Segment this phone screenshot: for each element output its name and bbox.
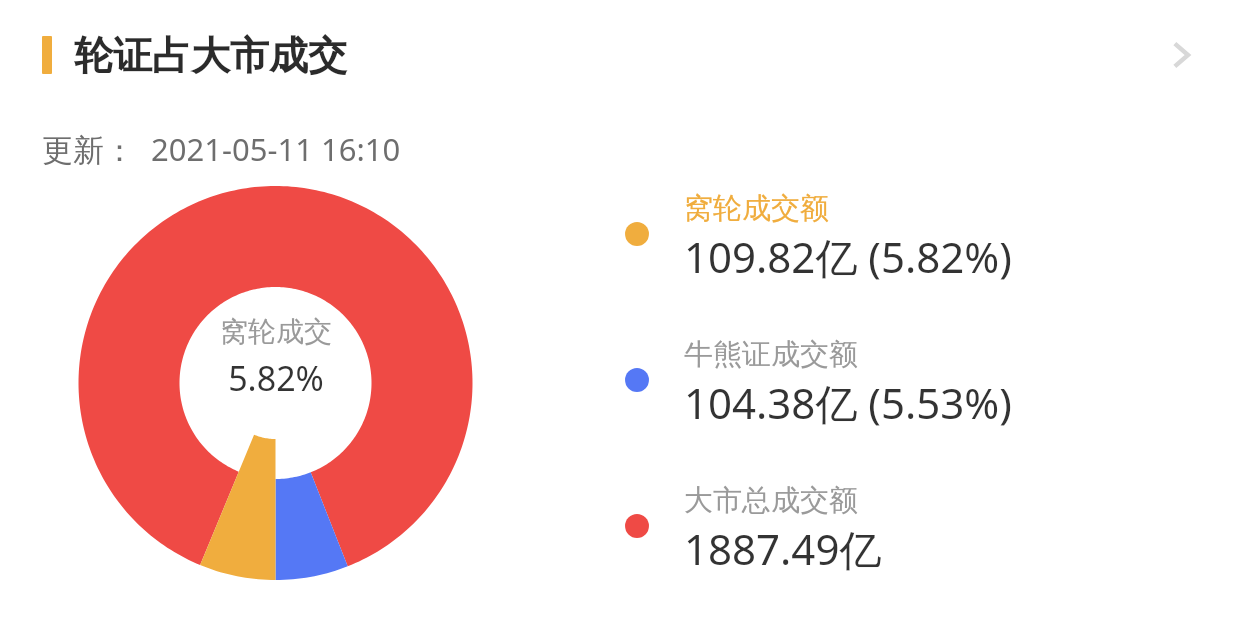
staticText: 大市总成交额 [684, 482, 858, 519]
button[interactable]: 大市总成交额 [624, 478, 1224, 574]
button[interactable]: 窝轮成交 [58, 166, 494, 602]
staticText: 104.38亿 (5.53%) [684, 374, 1012, 426]
staticText: 窝轮成交额 [684, 190, 829, 227]
button[interactable]: 牛熊证成交额 [624, 332, 1224, 428]
staticText: 更新： 2021-05-11 16:10 [42, 128, 401, 170]
staticText: 1887.49亿 [684, 520, 882, 572]
staticText: 牛熊证成交额 [684, 336, 858, 373]
button[interactable]: 窝轮成交额 [624, 186, 1224, 282]
button[interactable]: 轮证占大市成交 [0, 0, 1242, 110]
staticText: 5.82% [228, 355, 324, 401]
staticText: 109.82亿 (5.82%) [684, 228, 1012, 280]
button[interactable]: 查看更多 [1136, 10, 1226, 100]
staticText: 窝轮成交 [220, 314, 332, 349]
staticText: 轮证占大市成交 [74, 31, 347, 80]
